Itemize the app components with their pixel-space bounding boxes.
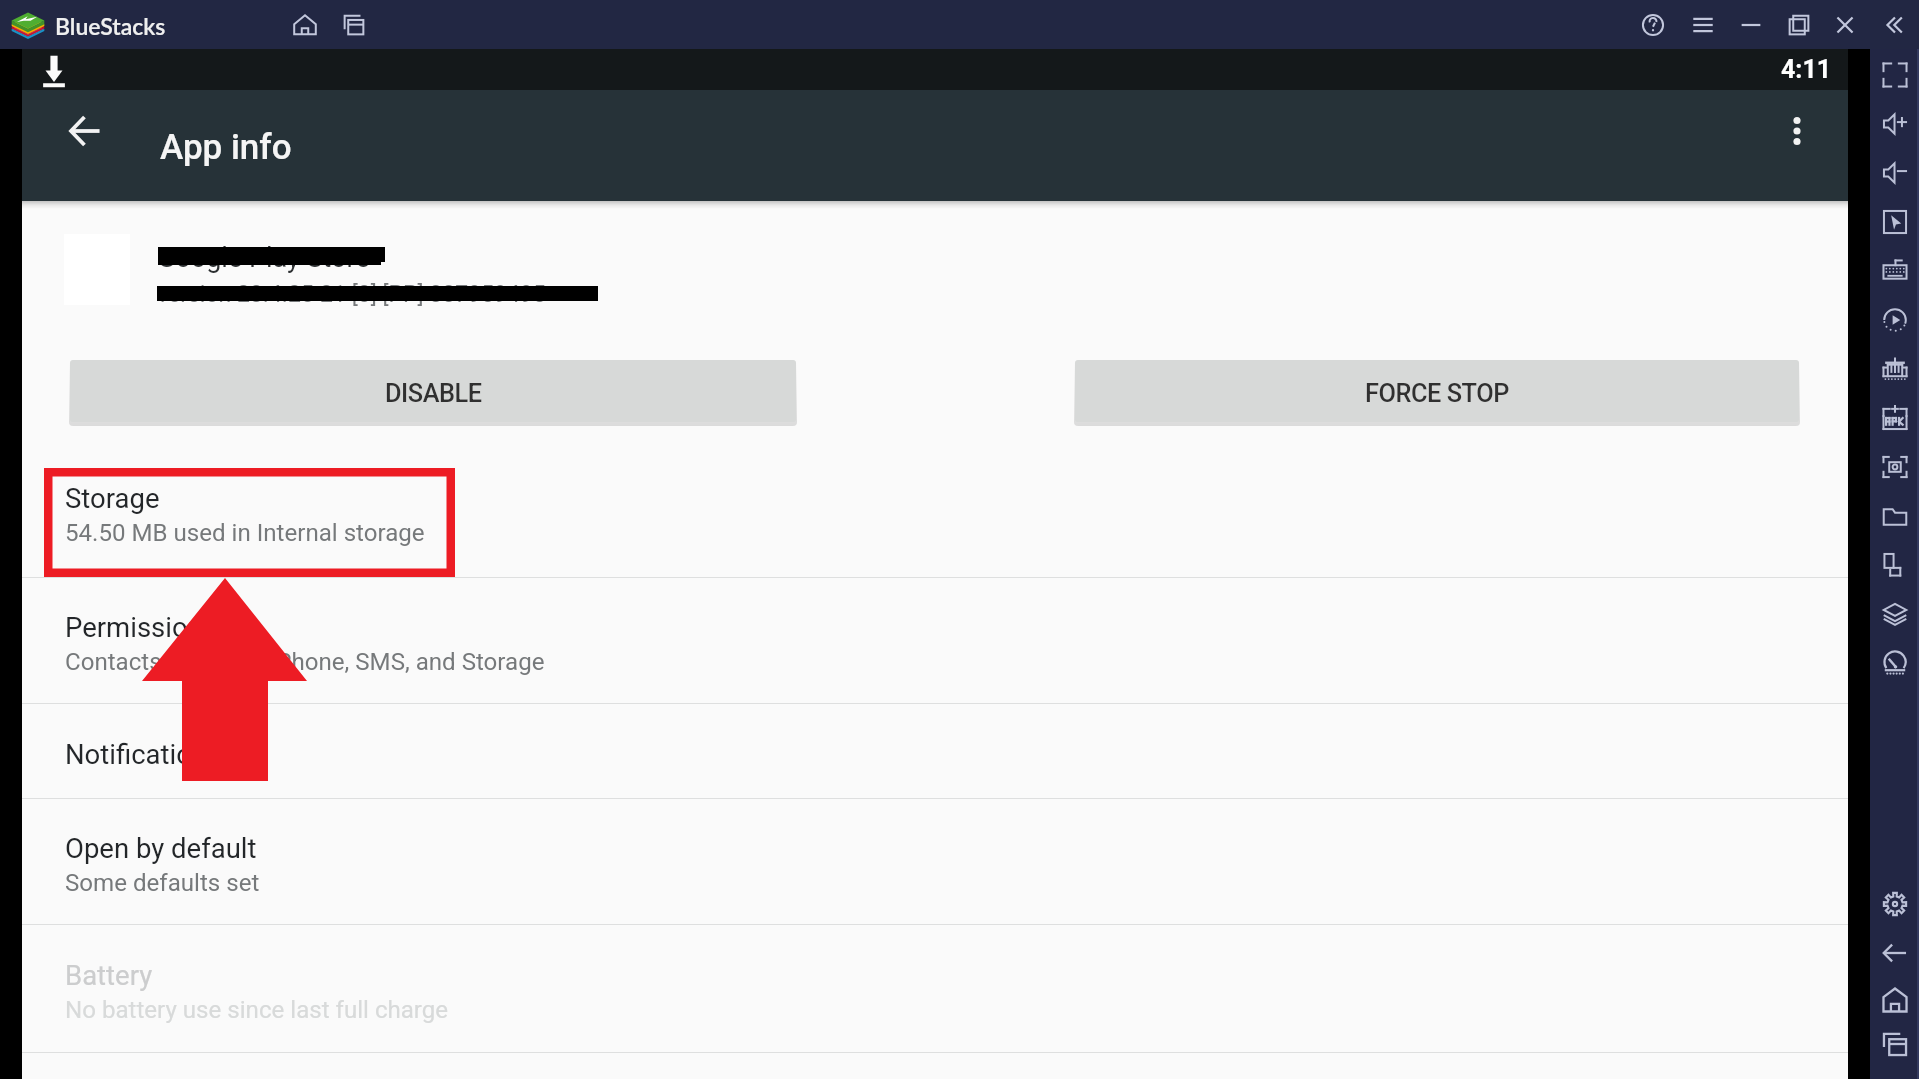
button[interactable]: Rotate [1874,544,1916,586]
button[interactable]: Screenshot [1874,446,1916,488]
staticText: 4:11 [1781,55,1832,84]
button[interactable]: Back [57,103,113,159]
button[interactable]: Collapse sidebar [1877,7,1913,43]
button[interactable]: Fullscreen [1874,54,1916,96]
button[interactable]: Volume up [1874,103,1916,145]
staticText: Contacts, Location, Phone, SMS, and Stor… [65,648,545,676]
button[interactable]: Volume down [1874,152,1916,194]
staticText: FORCE STOP [1365,379,1509,409]
staticText: Permissions [65,611,218,643]
button[interactable]: Game controls [1874,348,1916,390]
button[interactable]: Back [1874,932,1916,974]
staticText: Some defaults set [65,869,260,897]
button[interactable]: Storage [22,445,1848,577]
button[interactable]: Macro recorder [1874,299,1916,341]
staticText: version 23.4.25-21 [0] [PP] 387959495 [157,281,546,308]
staticText: Notifications [65,738,222,770]
button[interactable]: Recent apps [1874,1023,1916,1065]
button[interactable]: Keyboard controls [1874,250,1916,292]
button[interactable]: Close [1827,7,1863,43]
button[interactable]: Restore [1781,7,1817,43]
button[interactable]: Notifications [22,704,1848,798]
button[interactable]: Permissions [22,578,1848,703]
button[interactable]: More options [1769,103,1825,159]
staticText: 54.50 MB used in Internal storage [65,519,425,547]
button[interactable]: Media manager [1874,495,1916,537]
staticText: Battery [65,959,153,991]
staticText: Storage [65,482,160,514]
button[interactable]: Help [1635,7,1671,43]
button[interactable]: Menu [1685,7,1721,43]
button[interactable]: Install APK [1874,397,1916,439]
staticText: DISABLE [385,379,482,409]
button[interactable]: Performance [1874,642,1916,684]
button[interactable]: FORCE STOP [1075,360,1799,422]
button[interactable]: Multi-instance [1874,593,1916,635]
staticText: App info [160,127,292,168]
button[interactable]: Multi-instance manager [336,7,372,43]
staticText: Open by default [65,832,257,864]
staticText: Google Play Store [157,242,370,274]
staticText: No battery use since last full charge [65,996,449,1024]
button[interactable]: Open by default [22,799,1848,924]
button[interactable]: Minimize [1733,7,1769,43]
button[interactable]: Battery [22,925,1848,1052]
button[interactable]: Home [287,7,323,43]
button[interactable]: Settings [1874,883,1916,925]
button[interactable]: Home [1874,979,1916,1021]
button[interactable]: DISABLE [70,360,796,422]
button[interactable]: Pointer mode [1874,201,1916,243]
staticText: BlueStacks [55,12,166,40]
